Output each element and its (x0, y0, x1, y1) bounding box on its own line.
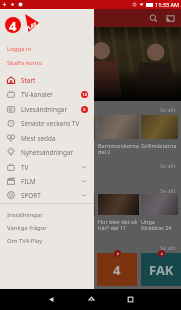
button[interactable]: Unga föräldrar 24 (141, 194, 178, 232)
button[interactable]: Unga föräldrar 24 (54, 194, 95, 232)
button[interactable]: TV-kanaler (0, 87, 94, 101)
staticText: ...tama (0, 82, 28, 93)
staticText: Inställningar (7, 211, 43, 219)
staticText: Logga in (7, 45, 32, 53)
staticText: 12 (82, 92, 87, 98)
staticText: TV-kanaler (21, 90, 53, 99)
staticText: Unga föräldrar 24 (141, 218, 178, 232)
staticText: Skaffa konto (7, 59, 43, 67)
button[interactable]: FILM (0, 174, 94, 188)
staticText: Om TV4 Play (7, 237, 43, 245)
staticText: Barnmorskorna del 2 (10, 142, 51, 156)
staticText: Livesändningar (21, 105, 68, 114)
staticText: 4 (113, 261, 121, 279)
button[interactable]: Skaffa konto (0, 57, 94, 69)
button[interactable]: Se allt (160, 187, 176, 194)
button[interactable]: Barnmorskorna del 2 (10, 115, 51, 156)
staticText: Mest sedda (21, 134, 56, 143)
button[interactable]: Nyhetsändningar (0, 145, 94, 159)
staticText: FILM (21, 177, 36, 186)
button[interactable]: Recent apps (108, 289, 152, 310)
button[interactable]: Home (69, 289, 113, 310)
button[interactable]: Logga in (0, 43, 94, 55)
button[interactable]: Start (0, 73, 94, 87)
button[interactable]: Hur blev det så här? del 11 (10, 194, 51, 232)
staticText: 3 (83, 107, 86, 113)
staticText: Hur blev det så här? del 11 (98, 218, 139, 232)
button[interactable]: TV (0, 160, 94, 174)
button[interactable]: Se allt (160, 106, 176, 113)
staticText: Hur blev det så här? del 11 (10, 218, 51, 232)
staticText: TV (21, 163, 29, 172)
button[interactable]: Senaste veckans TV (0, 116, 94, 130)
staticText: Vanliga frågor (7, 224, 47, 232)
button[interactable]: Inställningar (0, 209, 94, 221)
button[interactable]: SPORT (0, 188, 94, 202)
button[interactable]: Se allt (160, 162, 176, 169)
staticText: SPORT (21, 191, 41, 200)
staticText: FAK (149, 261, 174, 279)
button[interactable]: Hur blev det så här? del 11 (98, 194, 139, 232)
staticText: PLAY (24, 20, 39, 33)
button[interactable]: Se allt (160, 244, 176, 251)
button[interactable]: Livesändningar (0, 102, 94, 116)
staticText: Barnmorskorna del 2 (98, 142, 139, 156)
button[interactable]: Barnmorskorna del 2 (98, 115, 139, 156)
button[interactable]: FAK (141, 253, 181, 286)
staticText: 11:33 AM (155, 1, 179, 8)
staticText: Start (21, 76, 36, 85)
staticText: 4 (9, 17, 17, 33)
staticText: Grillmästarna (141, 142, 177, 149)
button[interactable]: Cast (163, 11, 177, 25)
button[interactable]: Search (146, 11, 160, 25)
button[interactable]: Vanliga frågor (0, 222, 94, 234)
button[interactable]: Open navigation drawer (4, 11, 18, 25)
staticText: Senaste veckans TV (21, 119, 80, 128)
button[interactable]: Back (29, 289, 73, 310)
button[interactable]: 4 (97, 253, 137, 286)
staticText: Nyhetsändningar (21, 148, 74, 157)
staticText: Unga föräldrar 24 (54, 218, 95, 232)
button[interactable]: Mest sedda (0, 131, 94, 145)
button[interactable]: Grillmästarna (54, 115, 95, 149)
button[interactable]: Grillmästarna (141, 115, 178, 149)
button[interactable]: Om TV4 Play (0, 235, 94, 247)
